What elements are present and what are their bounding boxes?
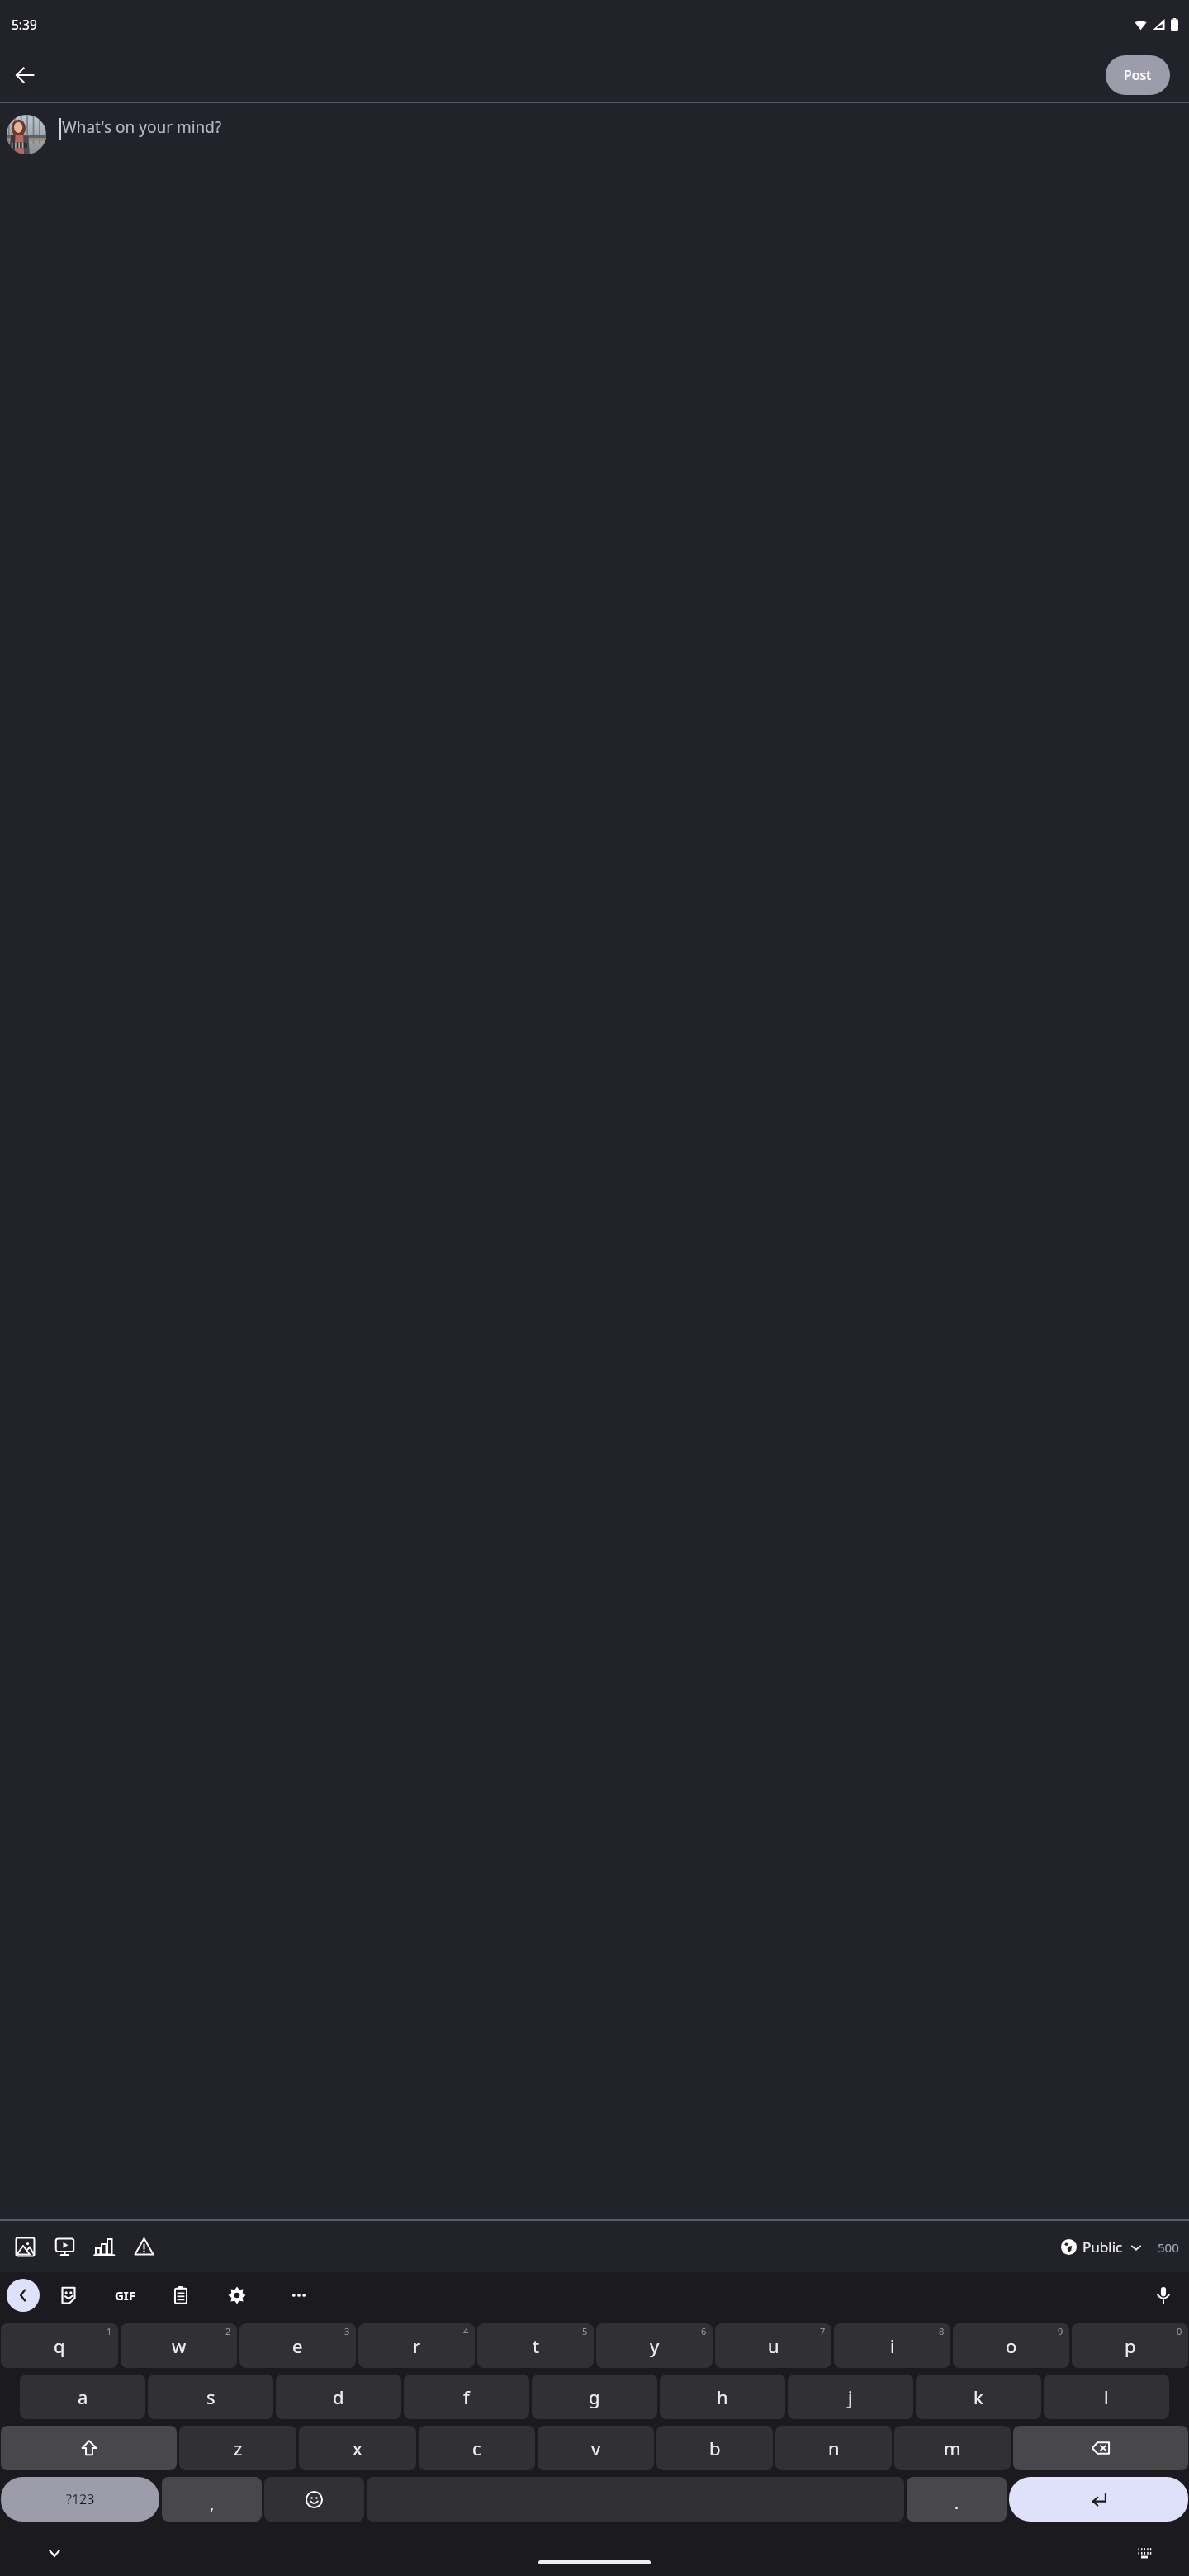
staticText: p [1125,2333,1136,2358]
button[interactable]: l [1044,2375,1169,2419]
button[interactable]: k [916,2375,1041,2419]
staticText: z [234,2436,243,2460]
staticText: 4 [463,2325,469,2337]
staticText: h [717,2384,728,2409]
button[interactable]: Previous [7,2279,40,2312]
staticText: n [828,2436,840,2460]
button[interactable]: a [20,2375,145,2419]
button[interactable]: Comma [162,2477,262,2522]
button[interactable]: Enter [1009,2477,1188,2522]
staticText: g [589,2384,600,2409]
staticText: 0 [1177,2325,1182,2337]
staticText: 7 [820,2325,826,2337]
button[interactable]: o [953,2323,1069,2368]
button[interactable]: Add photo [5,2227,45,2266]
staticText: , [210,2493,215,2515]
button[interactable]: Backspace [1013,2426,1188,2470]
button[interactable]: t [477,2323,594,2368]
button[interactable]: y [596,2323,713,2368]
button[interactable]: Add video [45,2227,84,2266]
button[interactable]: n [775,2426,892,2470]
button[interactable]: b [656,2426,773,2470]
staticText: s [206,2384,216,2409]
staticText: x [353,2436,362,2460]
button[interactable]: More options [282,2278,316,2313]
staticText: y [650,2333,660,2358]
staticText: 5:39 [12,16,37,33]
staticText: d [333,2384,344,2409]
button[interactable]: Emoji [264,2477,364,2522]
button[interactable]: Profile photo [7,115,46,154]
staticText: 8 [939,2325,945,2337]
staticText: 2 [225,2325,231,2337]
button[interactable]: v [538,2426,654,2470]
button[interactable]: s [148,2375,273,2419]
staticText: 9 [1058,2325,1063,2337]
staticText: j [848,2384,853,2409]
button[interactable]: p [1072,2323,1188,2368]
staticText: c [472,2436,481,2460]
button[interactable]: f [404,2375,529,2419]
button[interactable]: Hide keyboard [40,2538,69,2568]
button[interactable]: Content warning [124,2227,163,2266]
staticText: 5 [582,2325,588,2337]
staticText: r [413,2333,421,2358]
staticText: 500 [1158,2239,1179,2256]
button[interactable]: Stickers [51,2278,86,2313]
staticText: 1 [107,2325,112,2337]
staticText: o [1006,2333,1017,2358]
staticText: 3 [344,2325,350,2337]
staticText: b [709,2436,721,2460]
staticText: What's on your mind? [62,116,222,138]
staticText: a [78,2384,88,2409]
button[interactable]: ?123 [1,2477,159,2522]
button[interactable]: z [179,2426,296,2470]
button[interactable]: x [299,2426,416,2470]
button[interactable]: u [715,2323,831,2368]
staticText: Post [1124,66,1152,84]
staticText: . [955,2493,959,2514]
staticText: e [292,2333,303,2358]
staticText: t [533,2333,539,2358]
staticText: 6 [701,2325,707,2337]
button[interactable]: Shift [1,2426,177,2470]
button[interactable]: w [121,2323,237,2368]
staticText: GIF [115,2287,135,2304]
button[interactable]: r [358,2323,475,2368]
button[interactable]: h [660,2375,785,2419]
staticText: w [172,2333,187,2358]
button[interactable]: q [1,2323,118,2368]
button[interactable]: d [276,2375,401,2419]
staticText: v [591,2436,601,2460]
button[interactable]: GIF [107,2278,142,2313]
button[interactable]: i [834,2323,950,2368]
staticText: m [944,2436,961,2460]
staticText: Public [1082,2237,1123,2256]
button[interactable]: Period [907,2477,1007,2522]
button[interactable]: Settings [220,2278,254,2313]
button[interactable]: Back [5,55,45,95]
staticText: f [463,2384,470,2409]
button[interactable]: c [419,2426,535,2470]
staticText: k [973,2384,983,2409]
staticText: i [890,2333,895,2358]
button[interactable]: j [788,2375,913,2419]
staticText: l [1104,2384,1109,2409]
button[interactable]: Post [1106,55,1170,95]
button[interactable]: Public [1058,2233,1146,2261]
button[interactable]: Clipboard [163,2278,198,2313]
button[interactable]: Add poll [84,2227,124,2266]
button[interactable]: g [532,2375,657,2419]
staticText: q [54,2333,65,2358]
button[interactable]: e [239,2323,356,2368]
staticText: u [768,2333,779,2358]
staticText: ?123 [66,2490,95,2508]
button[interactable]: Switch keyboard [1130,2538,1159,2568]
button[interactable]: Voice input [1146,2278,1181,2313]
button[interactable]: m [894,2426,1011,2470]
